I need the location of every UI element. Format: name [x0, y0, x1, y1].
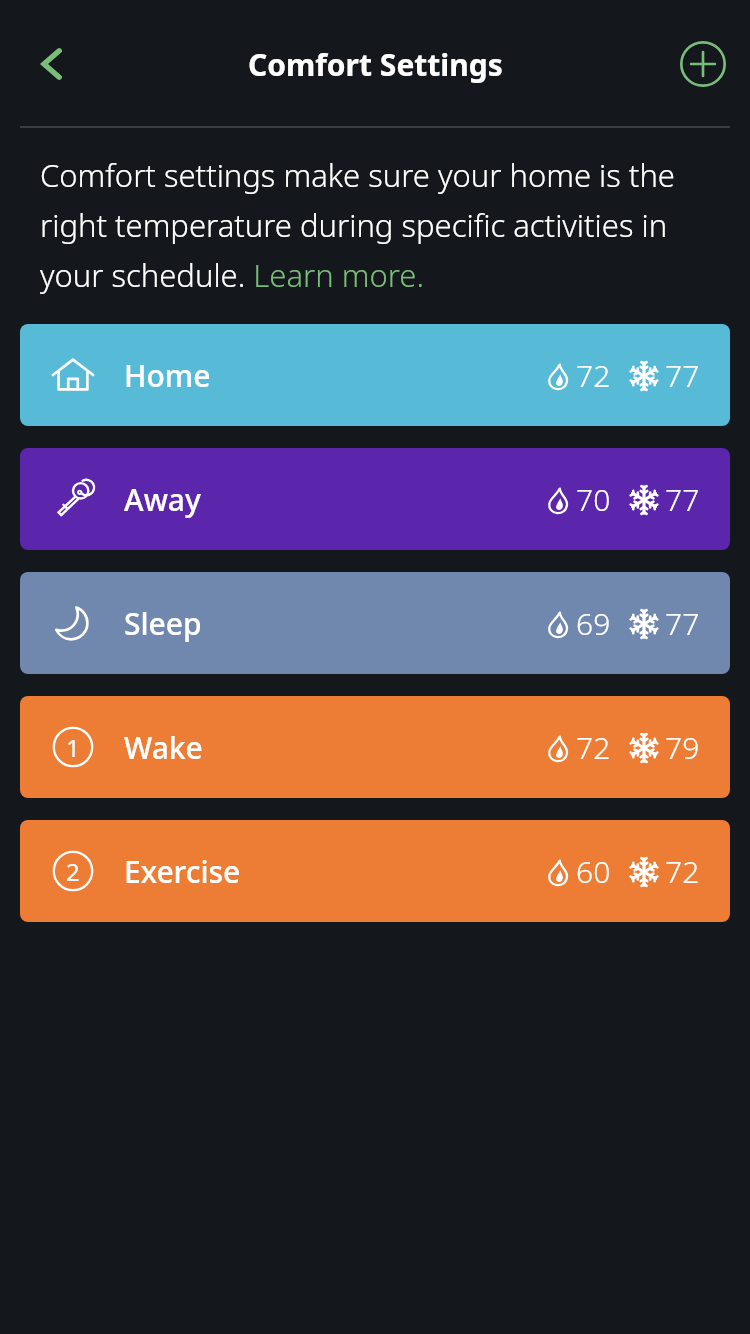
staticText: Wake [124, 727, 203, 768]
button[interactable]: Back [16, 28, 88, 100]
staticText: Sleep [124, 603, 202, 644]
button[interactable]: 2 [20, 820, 730, 922]
button[interactable]: 1 [20, 696, 730, 798]
staticText: 77 [665, 355, 700, 396]
staticText: 70 [576, 479, 611, 520]
staticText: 72 [665, 851, 700, 892]
button[interactable]: Sleep [20, 572, 730, 674]
staticText: Comfort Settings [248, 44, 503, 85]
staticText: 77 [665, 603, 700, 644]
staticText: Away [124, 479, 201, 520]
staticText: 1 [66, 731, 80, 764]
staticText: 72 [576, 355, 611, 396]
staticText: 72 [576, 727, 611, 768]
button[interactable]: Away [20, 448, 730, 550]
button[interactable]: Add comfort setting [670, 31, 736, 97]
staticText: 60 [576, 851, 611, 892]
staticText: 2 [66, 855, 80, 888]
staticText: 77 [665, 479, 700, 520]
button[interactable]: Home [20, 324, 730, 426]
staticText: 79 [665, 727, 700, 768]
staticText: 69 [576, 603, 611, 644]
staticText: Comfort settings make sure your home is … [40, 154, 720, 296]
staticText: Home [124, 355, 211, 396]
staticText: Exercise [124, 851, 241, 892]
